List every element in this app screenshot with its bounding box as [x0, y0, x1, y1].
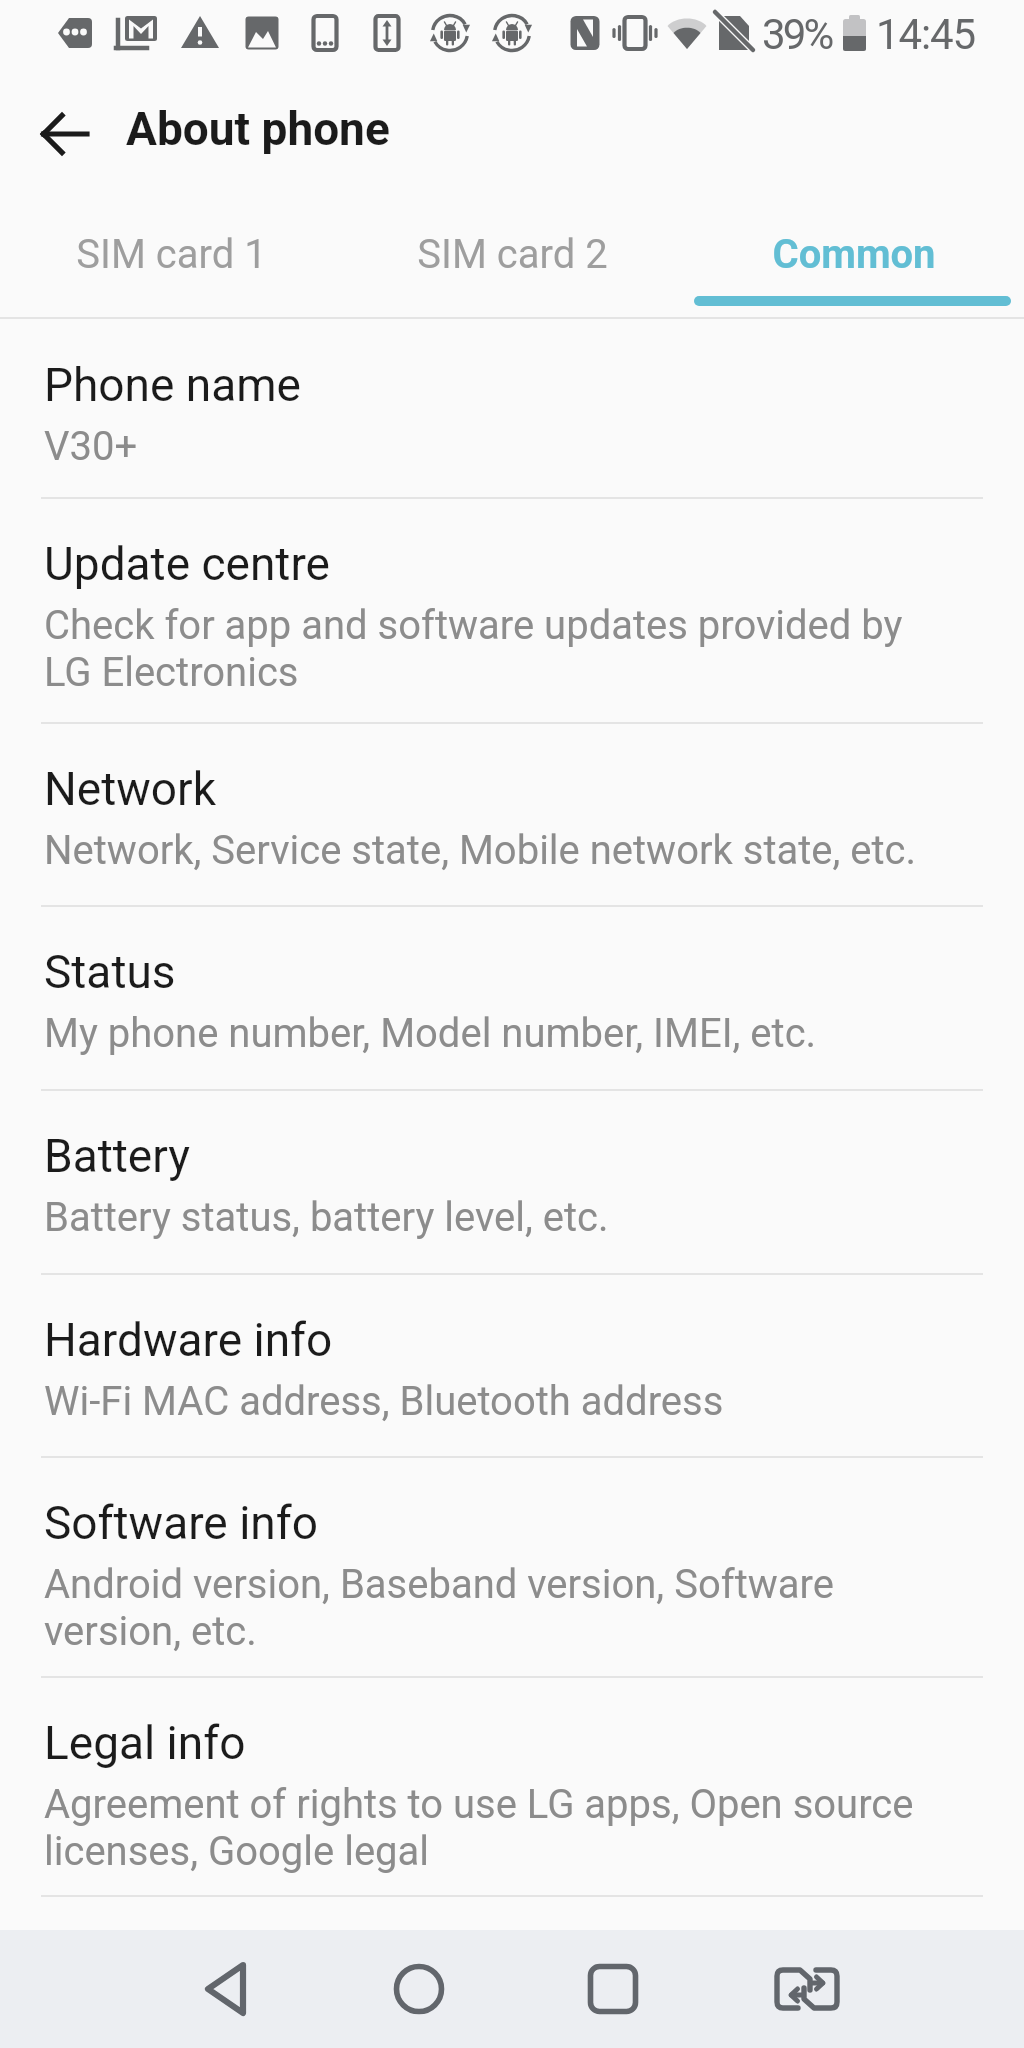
button[interactable]: Hardware info [0, 1275, 1024, 1458]
staticText: SIM card 1 [76, 231, 267, 278]
staticText: Status [44, 945, 176, 999]
button[interactable]: Back [168, 1930, 286, 2048]
button[interactable]: Software info [0, 1458, 1024, 1678]
button[interactable]: SIM card 2 [342, 190, 683, 318]
button[interactable]: Split screen [748, 1930, 866, 2048]
button[interactable]: Status [0, 907, 1024, 1091]
staticText: Network, Service state, Mobile network s… [44, 827, 917, 874]
staticText: About phone [126, 102, 390, 156]
staticText: Wi-Fi MAC address, Bluetooth address [44, 1378, 724, 1425]
staticText: Battery [44, 1129, 190, 1183]
button[interactable]: Update centre [0, 499, 1024, 724]
button[interactable]: Legal info [0, 1678, 1024, 1897]
staticText: Check for app and software updates provi… [44, 602, 903, 649]
button[interactable]: Phone name [0, 320, 1024, 499]
staticText: LG Electronics [44, 649, 299, 696]
staticText: Android version, Baseband version, Softw… [44, 1561, 834, 1608]
button[interactable]: Network [0, 724, 1024, 907]
button[interactable]: Recents [554, 1930, 672, 2048]
staticText: Update centre [44, 537, 330, 591]
staticText: Legal info [44, 1716, 246, 1770]
staticText: Software info [44, 1496, 318, 1550]
staticText: licenses, Google legal [44, 1828, 430, 1875]
staticText: Agreement of rights to use LG apps, Open… [44, 1781, 914, 1828]
staticText: My phone number, Model number, IMEI, etc… [44, 1010, 817, 1057]
staticText: V30+ [44, 423, 138, 470]
staticText: Phone name [44, 358, 301, 412]
staticText: 14:45 [876, 10, 976, 59]
staticText: Battery status, battery level, etc. [44, 1194, 609, 1241]
staticText: version, etc. [44, 1608, 257, 1655]
staticText: 39% [762, 10, 832, 59]
button[interactable]: Home [360, 1930, 478, 2048]
button[interactable]: Back [25, 92, 109, 176]
staticText: Common [772, 231, 936, 278]
staticText: SIM card 2 [417, 231, 608, 278]
staticText: Network [44, 762, 216, 816]
staticText: Hardware info [44, 1313, 333, 1367]
button[interactable]: Common [683, 190, 1024, 318]
button[interactable]: SIM card 1 [0, 190, 342, 318]
button[interactable]: Battery [0, 1091, 1024, 1275]
